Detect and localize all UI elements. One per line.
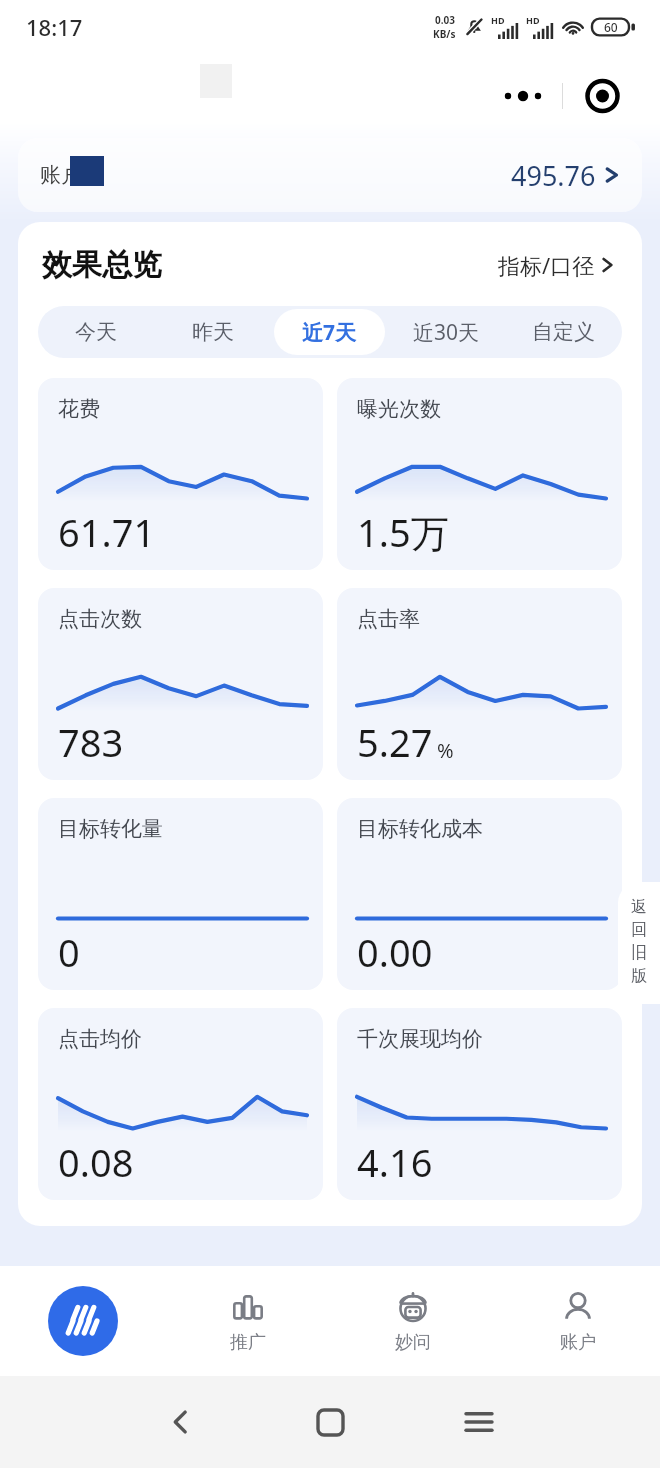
button[interactable]: 账户 [495,1266,660,1376]
staticText: 1.5万 [357,506,449,558]
staticText: 目标转化量 [58,816,163,842]
button[interactable]: 指标/口径 [494,246,618,284]
button[interactable]: Home [0,1266,165,1376]
staticText: 0.00 [357,926,433,978]
staticText: 4.16 [357,1136,433,1188]
button[interactable]: 花费 [38,378,323,570]
button[interactable]: 点击次数 [38,588,323,780]
button[interactable]: 昨天 [157,309,268,355]
button[interactable]: 妙问 [330,1266,495,1376]
button[interactable]: Home [302,1394,358,1450]
button[interactable]: 目标转化量 [38,798,323,990]
staticText: 返 [631,897,647,917]
button[interactable]: 今天 [41,309,151,355]
button[interactable]: 点击率 [337,588,622,780]
button[interactable]: Recent apps [451,1394,507,1450]
staticText: 账户 [560,1331,596,1354]
staticText: 推广 [230,1331,266,1354]
button[interactable]: 目标转化成本 [337,798,622,990]
button[interactable]: 点击均价 [38,1008,323,1200]
staticText: 指标/口径 [498,250,595,280]
button[interactable]: Back [153,1394,209,1450]
button[interactable]: More options and close [484,68,642,124]
staticText: 0.03 [435,13,455,27]
staticText: 花费 [58,396,100,422]
staticText: KB/s [433,27,456,41]
staticText: 61.71 [58,506,156,558]
staticText: 千次展现均价 [357,1026,483,1052]
staticText: 自定义 [532,319,595,345]
staticText: 效果总览 [42,246,162,284]
staticText: % [437,737,454,764]
staticText: 0.08 [58,1136,134,1188]
staticText: 目标转化成本 [357,816,483,842]
staticText: 点击均价 [58,1026,142,1052]
staticText: 5.27 [357,716,433,768]
staticText: HD [491,14,505,26]
staticText: 0 [58,926,80,978]
staticText: 点击次数 [58,606,142,632]
button[interactable]: 自定义 [508,309,619,355]
staticText: 回 [631,920,647,940]
staticText: 18:17 [26,12,83,42]
staticText: 近30天 [413,318,480,347]
staticText: 曝光次数 [357,396,441,422]
button[interactable]: 千次展现均价 [337,1008,622,1200]
button[interactable]: 曝光次数 [337,378,622,570]
staticText: 60 [604,19,618,35]
staticText: 昨天 [192,319,234,345]
button[interactable]: 账户 [18,138,642,212]
button[interactable]: 推广 [165,1266,330,1376]
staticText: 今天 [75,319,117,345]
staticText: 783 [58,716,124,768]
staticText: HD [526,14,540,26]
button[interactable]: 返 [618,882,660,1004]
staticText: 旧 [631,943,647,963]
button[interactable]: 近7天 [274,309,385,355]
staticText: 账户 [40,162,82,188]
staticText: 版 [631,966,647,986]
staticText: 点击率 [357,606,420,632]
staticText: 近7天 [302,318,357,347]
button[interactable]: 近30天 [391,309,502,355]
staticText: 495.76 [511,157,596,194]
staticText: 妙问 [395,1331,431,1354]
